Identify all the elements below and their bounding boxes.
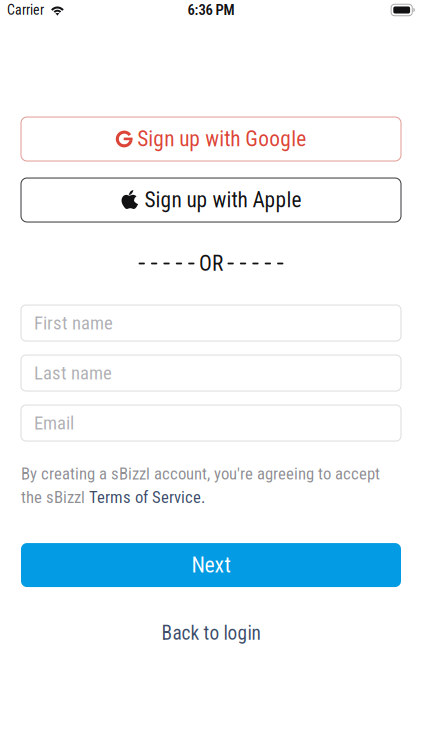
button[interactable]: Sign up with Apple xyxy=(21,178,401,222)
staticText: Email xyxy=(34,412,74,434)
button[interactable]: Next xyxy=(21,543,401,587)
staticText: Next xyxy=(191,552,230,578)
button[interactable]: Last name xyxy=(21,355,401,391)
button[interactable]: First name xyxy=(21,305,401,341)
staticText: Sign up with Google xyxy=(137,126,306,151)
button[interactable]: Back to login xyxy=(21,621,401,645)
staticText: Terms of Service. xyxy=(89,487,205,507)
staticText: Carrier xyxy=(7,2,44,18)
button[interactable]: Email xyxy=(21,405,401,441)
staticText: First name xyxy=(34,312,113,334)
staticText: Sign up with Apple xyxy=(144,187,301,212)
staticText: Last name xyxy=(34,362,112,384)
button[interactable]: Sign up with Google xyxy=(21,117,401,161)
staticText: By creating a sBizzl account, you're agr… xyxy=(21,464,380,483)
staticText: Back to login xyxy=(161,622,260,644)
staticText: OR xyxy=(199,251,223,276)
staticText: 6:36 PM xyxy=(187,1,234,19)
staticText: the sBizzl xyxy=(21,487,89,507)
